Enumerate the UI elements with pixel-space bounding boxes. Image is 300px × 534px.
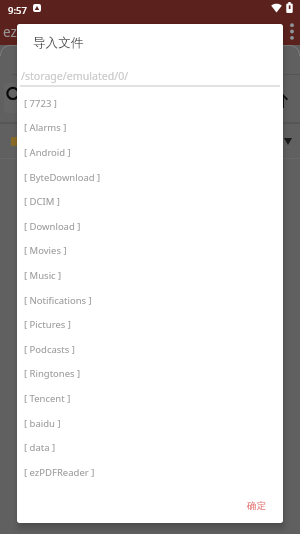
staticText: [ Movies ] [24,244,67,257]
button[interactable]: [ baidu ] [17,411,283,436]
button[interactable]: [ Notifications ] [17,288,283,313]
button[interactable]: [ Podcasts ] [17,337,283,362]
staticText: [ DCIM ] [24,195,60,208]
staticText: /storage/emulated/0/ [21,69,129,83]
button[interactable]: [ ByteDownload ] [17,165,283,190]
staticText: 确定 [247,500,266,512]
button[interactable]: [ Pictures ] [17,312,283,337]
button[interactable]: 确定 [239,495,274,517]
staticText: [ Android ] [24,146,71,159]
button[interactable]: [ Android ] [17,140,283,165]
button[interactable]: [ DCIM ] [17,189,283,214]
button[interactable]: [ Music ] [17,263,283,288]
button[interactable]: [ Tencent ] [17,386,283,411]
staticText: [ Notifications ] [24,294,92,307]
staticText: ezPDFReader [3,23,87,41]
staticText: [ data ] [24,441,56,454]
button[interactable]: [ data ] [17,435,283,460]
staticText: [ ezPDFReader ] [24,466,95,479]
staticText: [ Alarms ] [24,121,67,134]
staticText: [ Pictures ] [24,318,71,331]
staticText: 9:57 [8,4,27,17]
button[interactable]: [ Alarms ] [17,115,283,140]
staticText: [ baidu ] [24,417,61,430]
staticText: [ ByteDownload ] [24,171,101,184]
button[interactable]: More options [284,18,300,45]
button[interactable]: [ ezPDFReader ] [17,460,283,485]
staticText: [ 7723 ] [24,97,57,110]
staticText: [ Music ] [24,269,62,282]
button[interactable]: Search [4,83,54,113]
button[interactable]: [ Ringtones ] [17,361,283,386]
staticText: 导入文件 [33,35,84,51]
button[interactable]: [ Download ] [17,214,283,239]
staticText: [ Ringtones ] [24,367,81,380]
button[interactable]: [ Movies ] [17,238,283,263]
staticText: [ Podcasts ] [24,343,75,356]
staticText: [ Download ] [24,220,81,233]
button[interactable]: [ 7723 ] [17,91,283,116]
staticText: [ Tencent ] [24,392,71,405]
